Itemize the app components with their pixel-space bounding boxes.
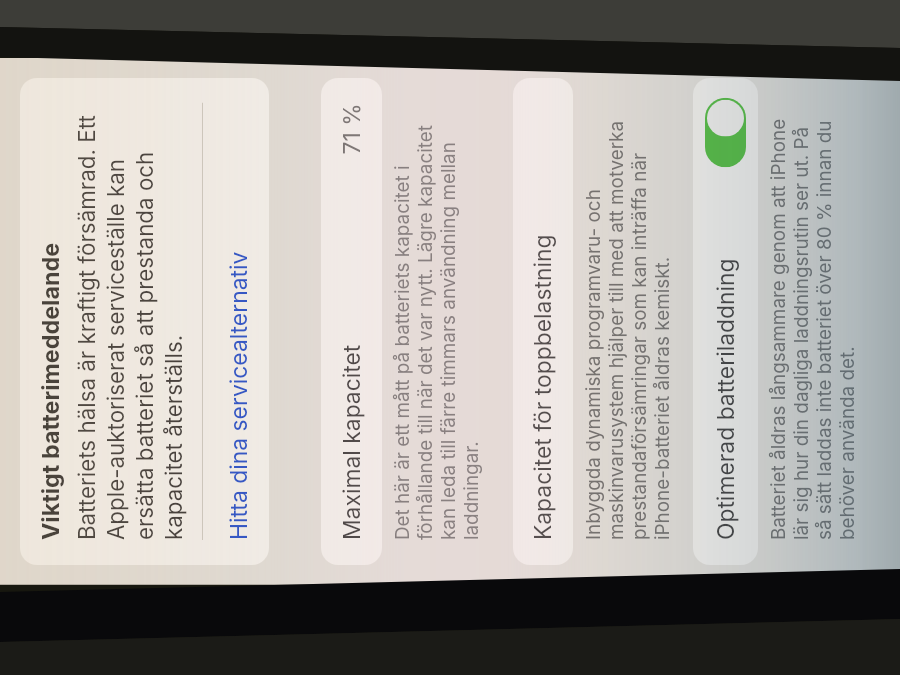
staticText: Maximal kapacitet: [338, 344, 366, 540]
staticText: Inbyggda dynamiska programvaru- och mask…: [582, 111, 674, 540]
staticText: Kapacitet för toppbelastning: [529, 234, 557, 540]
staticText: Optimerad batteriladdning: [712, 258, 740, 540]
button[interactable]: Hitta dina servicealternativ: [203, 103, 269, 540]
staticText: 71 %: [338, 103, 366, 154]
staticText: Det här är ett mått på batteriets kapaci…: [391, 111, 483, 540]
staticText: Batteriets hälsa är kraftigt försämrad. …: [72, 103, 188, 540]
staticText: Viktigt batterimeddelande: [36, 242, 64, 540]
staticText: Batteriet åldras långsammare genom att i…: [767, 111, 859, 540]
button[interactable]: Optimerad batteriladdning, på: [705, 98, 746, 167]
staticText: Hitta dina servicealternativ: [225, 251, 253, 540]
